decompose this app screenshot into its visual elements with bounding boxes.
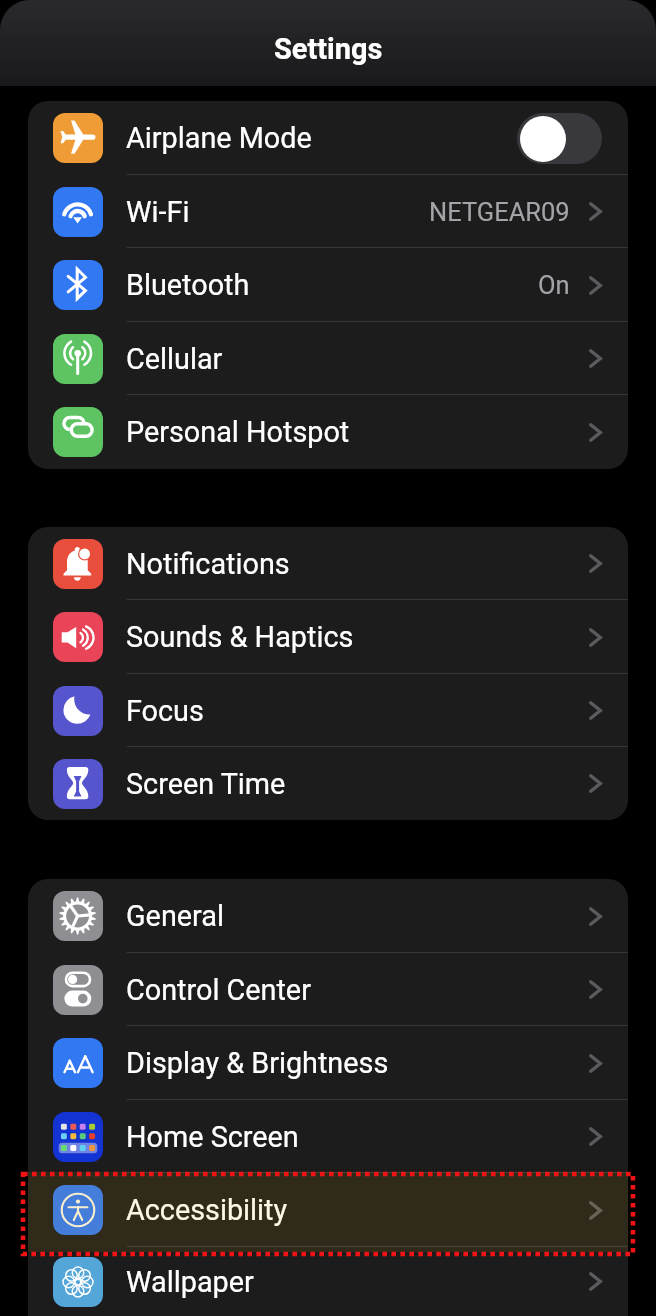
staticText: Bluetooth — [126, 268, 250, 302]
button[interactable]: Home Screen — [28, 1100, 628, 1173]
button[interactable]: General — [28, 879, 628, 953]
button[interactable]: Wallpaper — [28, 1247, 628, 1316]
button[interactable]: Cellular — [28, 322, 628, 395]
staticText: Accessibility — [126, 1193, 288, 1227]
staticText: Wallpaper — [126, 1265, 254, 1299]
staticText: Sounds & Haptics — [126, 620, 354, 654]
button[interactable]: Focus — [28, 674, 628, 747]
staticText: Control Center — [126, 973, 311, 1007]
button[interactable]: Personal Hotspot — [28, 395, 628, 469]
staticText: Display & Brightness — [126, 1046, 389, 1080]
staticText: On — [538, 270, 570, 300]
staticText: Home Screen — [126, 1120, 299, 1154]
button[interactable]: Screen Time — [28, 747, 628, 820]
staticText: Personal Hotspot — [126, 415, 350, 449]
button[interactable]: Control Center — [28, 953, 628, 1026]
staticText: Focus — [126, 694, 204, 728]
staticText: Cellular — [126, 342, 223, 376]
button[interactable]: Airplane Mode — [28, 101, 628, 175]
staticText: Notifications — [126, 547, 290, 581]
button[interactable]: Bluetooth — [28, 248, 628, 322]
button[interactable]: Wi-Fi — [28, 175, 628, 248]
button[interactable]: Sounds & Haptics — [28, 600, 628, 674]
staticText: Airplane Mode — [126, 121, 312, 155]
button[interactable]: Airplane Mode toggle — [517, 113, 602, 164]
staticText: NETGEAR09 — [429, 197, 570, 227]
staticText: Wi-Fi — [126, 195, 190, 229]
staticText: General — [126, 899, 224, 933]
button[interactable]: Display & Brightness — [28, 1026, 628, 1100]
staticText: Screen Time — [126, 767, 286, 801]
button[interactable]: Accessibility — [28, 1173, 628, 1247]
button[interactable]: Notifications — [28, 527, 628, 600]
staticText: Settings — [274, 32, 383, 66]
